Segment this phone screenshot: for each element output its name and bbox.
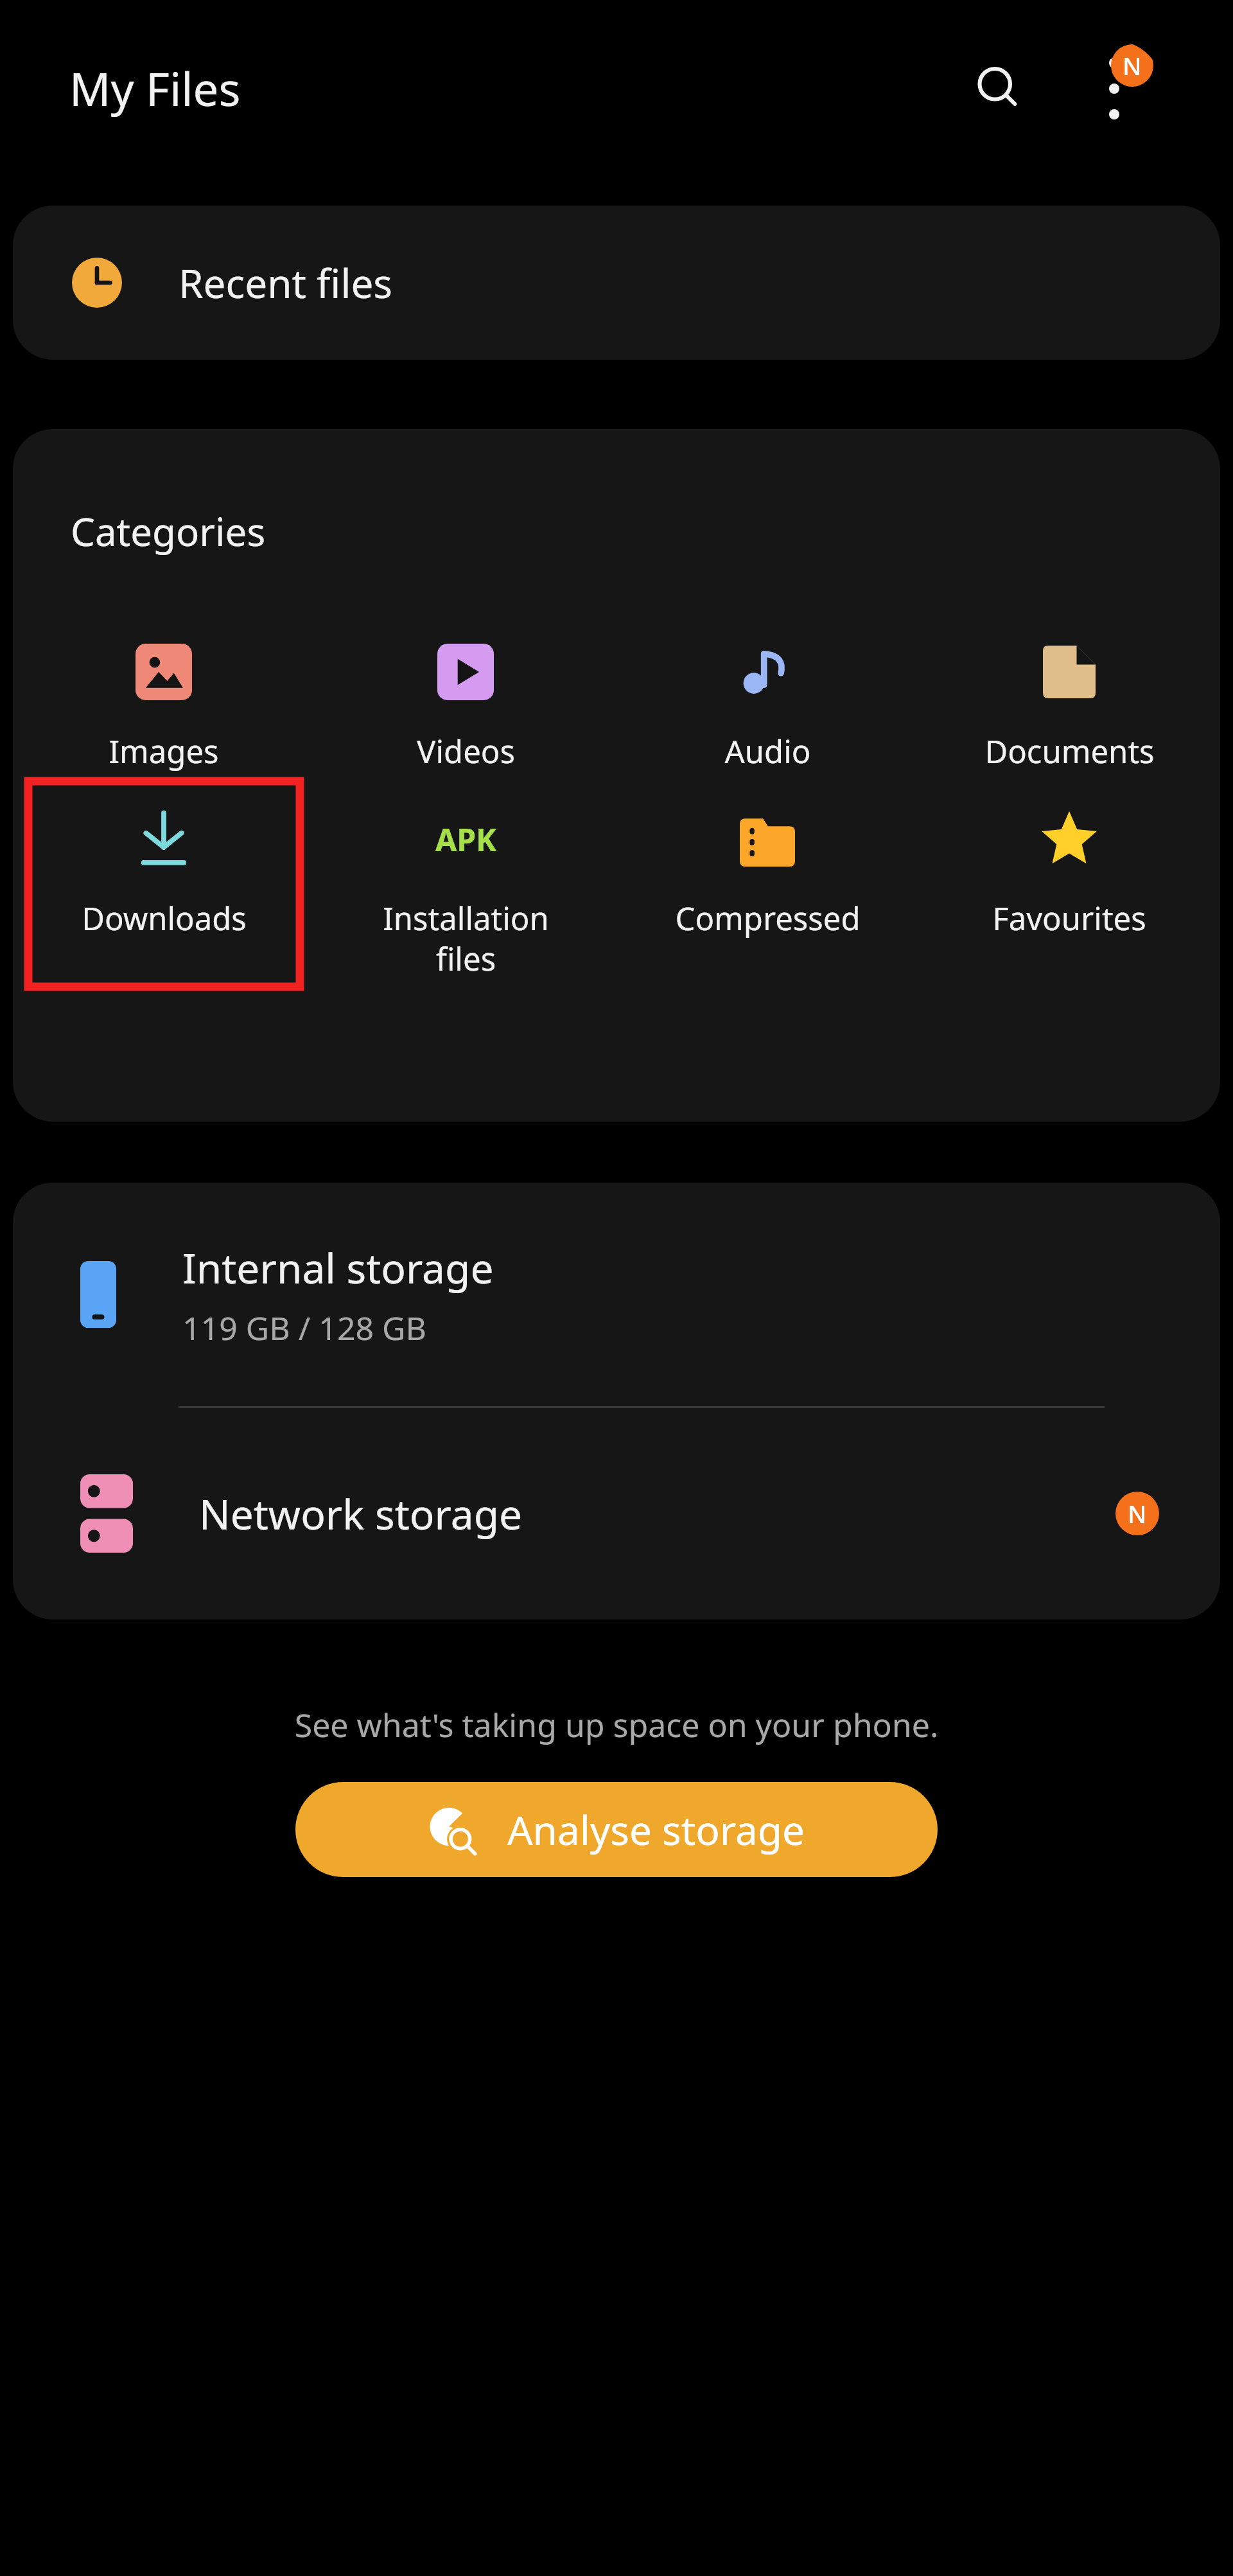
button[interactable]: Recent files [13, 206, 1220, 360]
staticText: Downloads [82, 897, 247, 940]
button[interactable]: Favourites [918, 775, 1220, 987]
button[interactable]: Images [13, 608, 315, 775]
staticText: N [1123, 49, 1142, 82]
button[interactable]: Audio [616, 608, 918, 775]
button[interactable]: Network storage [13, 1408, 1220, 1619]
button[interactable]: Analyse storage [295, 1782, 938, 1877]
staticText: Categories [71, 505, 266, 558]
staticText: Recent files [179, 256, 393, 310]
button[interactable]: Internal storage [13, 1183, 1220, 1406]
staticText: Images [109, 730, 219, 773]
button[interactable]: More options [1066, 40, 1162, 137]
staticText: My Files [69, 57, 241, 119]
staticText: Network storage [199, 1486, 1115, 1542]
staticText: Audio [724, 730, 811, 773]
staticText: Installation files [383, 897, 549, 980]
staticText: Videos [417, 730, 515, 773]
staticText: Analyse storage [507, 1803, 805, 1857]
button[interactable]: Documents [918, 608, 1220, 775]
staticText: Internal storage [182, 1240, 494, 1296]
staticText: APK [435, 818, 496, 860]
staticText: Compressed [675, 897, 861, 940]
staticText: N [1128, 1497, 1147, 1530]
staticText: Documents [984, 730, 1155, 773]
staticText: 119 GB / 128 GB [182, 1306, 426, 1350]
button[interactable]: Search [950, 40, 1047, 137]
staticText: Favourites [992, 897, 1146, 940]
button[interactable]: APK [315, 775, 616, 987]
button[interactable]: Videos [315, 608, 616, 775]
staticText: See what's taking up space on your phone… [0, 1703, 1233, 1747]
button[interactable]: Compressed [616, 775, 918, 987]
